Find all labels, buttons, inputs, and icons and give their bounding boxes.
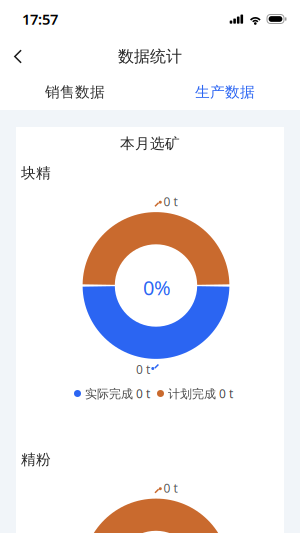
button[interactable]: 销售数据 [0, 75, 150, 109]
button[interactable]: 返回 [4, 42, 32, 70]
staticText: 0 t [136, 361, 150, 377]
staticText: 块精 [21, 164, 51, 182]
staticText: 本月选矿 [120, 134, 180, 152]
staticText: 0 t [163, 194, 177, 210]
staticText: 数据统计 [118, 47, 182, 66]
staticText: 销售数据 [45, 83, 105, 101]
staticText: 0% [143, 274, 171, 301]
staticText: 计划完成 0 t [168, 385, 233, 401]
button[interactable]: 生产数据 [150, 75, 300, 109]
staticText: 17:57 [22, 9, 58, 29]
staticText: 精粉 [21, 450, 51, 468]
staticText: 0 t [163, 480, 177, 496]
staticText: 生产数据 [195, 83, 255, 101]
staticText: 实际完成 0 t [85, 385, 150, 401]
